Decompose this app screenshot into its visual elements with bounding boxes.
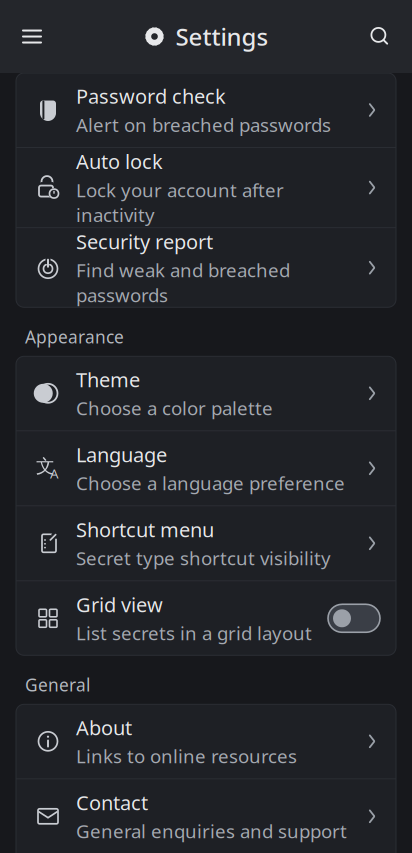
staticText: A [50, 464, 59, 482]
staticText: List secrets in a grid layout [76, 621, 312, 645]
staticText: Grid view [76, 591, 163, 618]
button[interactable]: Contact [16, 779, 396, 853]
staticText: Shortcut menu [76, 516, 214, 543]
button[interactable]: 文 [16, 431, 396, 505]
staticText: Password check [76, 83, 226, 109]
staticText: Security report [76, 228, 213, 255]
button[interactable]: Password check [16, 73, 396, 147]
button[interactable]: Grid view [16, 581, 396, 655]
button[interactable]: Security report [16, 228, 396, 307]
staticText: Theme [76, 366, 140, 393]
staticText: About [76, 714, 132, 741]
button[interactable]: About [16, 704, 396, 778]
button[interactable]: Menu [8, 12, 56, 60]
button[interactable]: Theme [16, 356, 396, 430]
button[interactable]: Auto lock [16, 148, 396, 227]
staticText: Settings [175, 21, 268, 52]
staticText: 文 [36, 455, 55, 478]
staticText: Auto lock [76, 148, 163, 175]
staticText: Links to online resources [76, 744, 297, 768]
button[interactable]: Shortcut menu [16, 506, 396, 580]
staticText: Find weak and breached passwords [76, 258, 290, 307]
staticText: Language [76, 441, 167, 468]
staticText: General enquiries and support [76, 819, 347, 843]
staticText: Lock your account after inactivity [76, 178, 284, 227]
staticText: Choose a color palette [76, 396, 273, 420]
button[interactable]: Search [356, 12, 404, 60]
staticText: Secret type shortcut visibility [76, 546, 331, 570]
staticText: Contact [76, 789, 148, 816]
staticText: General [25, 673, 90, 696]
staticText: Choose a language preference [76, 471, 345, 495]
staticText: Appearance [25, 325, 124, 348]
staticText: Alert on breached passwords [76, 112, 331, 137]
